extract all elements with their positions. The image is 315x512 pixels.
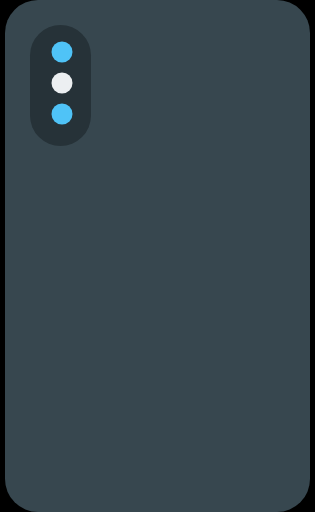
button[interactable]: Phone back with triple camera module — [0, 0, 315, 512]
